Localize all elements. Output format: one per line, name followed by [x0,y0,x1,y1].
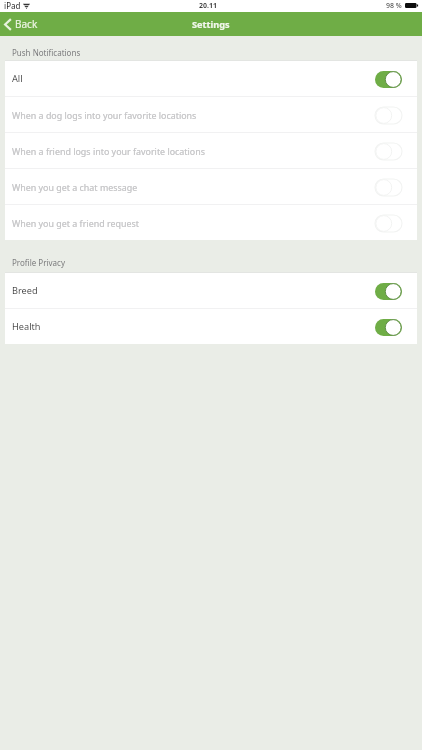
staticText: All [12,72,23,85]
staticText: iPad [4,0,21,11]
staticText: Settings [192,18,230,31]
staticText: Profile Privacy [12,257,65,268]
staticText: Push Notifications [12,47,81,58]
button[interactable]: When you get a friend request [5,205,417,240]
button[interactable]: Breed [5,273,417,308]
button[interactable]: When a friend logs into your favorite lo… [5,133,417,168]
staticText: Health [12,320,41,333]
button[interactable]: When a dog logs into your favorite locat… [5,97,417,132]
button[interactable]: Toggle on [375,71,402,88]
staticText: Breed [12,284,38,297]
button[interactable]: Toggle on [375,319,402,336]
staticText: When a dog logs into your favorite locat… [12,109,197,121]
button[interactable]: Health [5,309,417,344]
button[interactable]: Toggle off [375,179,402,196]
button[interactable]: Toggle off [375,215,402,232]
staticText: 98 % [386,1,402,11]
staticText: When you get a friend request [12,217,139,229]
button[interactable]: Back [0,14,46,34]
staticText: When you get a chat message [12,181,138,193]
button[interactable]: Toggle off [375,143,402,160]
staticText: 20.11 [199,1,217,11]
button[interactable]: Toggle on [375,283,402,300]
button[interactable]: All [5,61,417,96]
staticText: When a friend logs into your favorite lo… [12,145,205,157]
button[interactable]: When you get a chat message [5,169,417,204]
staticText: Back [15,17,38,31]
button[interactable]: Toggle off [375,107,402,124]
